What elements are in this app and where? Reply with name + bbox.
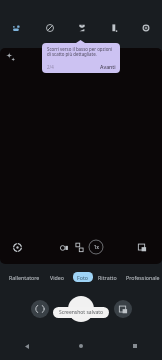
- button[interactable]: Ritratto: [98, 272, 117, 282]
- button[interactable]: Gallery preview: [134, 239, 150, 255]
- button[interactable]: Switch camera: [31, 300, 49, 318]
- button[interactable]: AI enhance: [3, 49, 17, 63]
- button[interactable]: Zoom level: [88, 239, 104, 255]
- staticText: 1x: [94, 244, 99, 250]
- button[interactable]: Timer: [66, 4, 98, 52]
- button[interactable]: Scene optimiser: [9, 239, 25, 255]
- button[interactable]: Professionale: [126, 272, 160, 282]
- button[interactable]: Shutter: [68, 296, 94, 322]
- button[interactable]: Gallery: [114, 300, 132, 318]
- button[interactable]: Avanti: [100, 63, 116, 70]
- button[interactable]: Recents: [108, 332, 162, 360]
- staticText: Foto: [77, 274, 89, 281]
- button[interactable]: Settings: [130, 4, 162, 52]
- button[interactable]: Flash off: [33, 4, 66, 52]
- button[interactable]: HDR auto: [0, 4, 33, 52]
- staticText: 2/4: [47, 64, 54, 70]
- staticText: Professionale: [126, 274, 160, 281]
- button[interactable]: Video: [50, 272, 64, 282]
- staticText: Video: [50, 274, 64, 281]
- button[interactable]: Aspect ratio: [56, 239, 72, 255]
- button[interactable]: Foto: [73, 272, 93, 282]
- staticText: Ritratto: [98, 274, 117, 281]
- button[interactable]: Back: [0, 332, 54, 360]
- staticText: Scorri verso il basso per opzioni di sca…: [47, 46, 116, 58]
- staticText: Rallentatore: [9, 274, 40, 281]
- button[interactable]: Home: [54, 332, 108, 360]
- button[interactable]: Resolution: [71, 239, 87, 255]
- button[interactable]: Rallentatore: [9, 272, 40, 282]
- staticText: Screenshot salvato: [59, 309, 104, 316]
- button[interactable]: Aspect ratio: [98, 4, 130, 52]
